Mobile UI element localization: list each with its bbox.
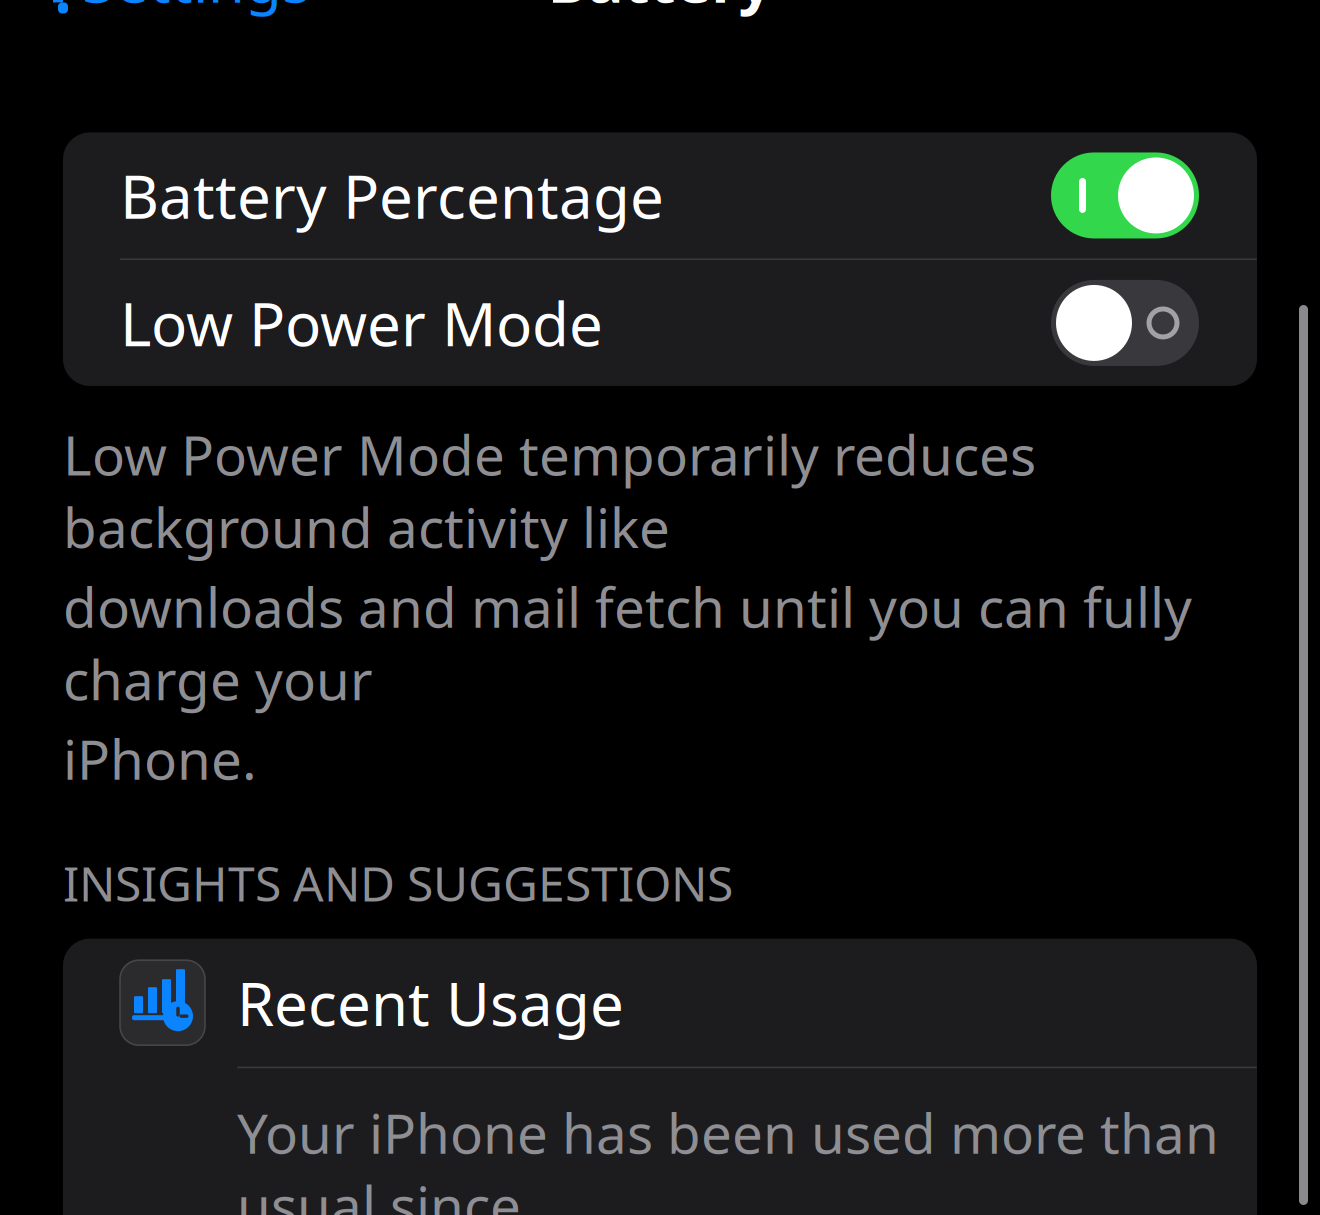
staticText: Battery Percentage (120, 156, 664, 235)
staticText: downloads and mail fetch until you can f… (63, 570, 1192, 715)
button[interactable]: Low Power Mode (63, 260, 1257, 386)
staticText: Settings (82, 0, 311, 19)
staticText: Battery (547, 0, 772, 19)
staticText: Your iPhone has been used more than usua… (237, 1096, 1219, 1215)
button[interactable]: Settings (0, 0, 311, 31)
button[interactable]: Recent Usage (63, 939, 1257, 1215)
staticText: Low Power Mode (120, 283, 603, 363)
staticText: INSIGHTS AND SUGGESTIONS (63, 851, 733, 915)
staticText: Low Power Mode temporarily reduces backg… (63, 418, 1036, 563)
staticText: Recent Usage (237, 963, 624, 1042)
button[interactable]: Battery Percentage (63, 132, 1257, 258)
staticText: iPhone. (63, 722, 257, 795)
